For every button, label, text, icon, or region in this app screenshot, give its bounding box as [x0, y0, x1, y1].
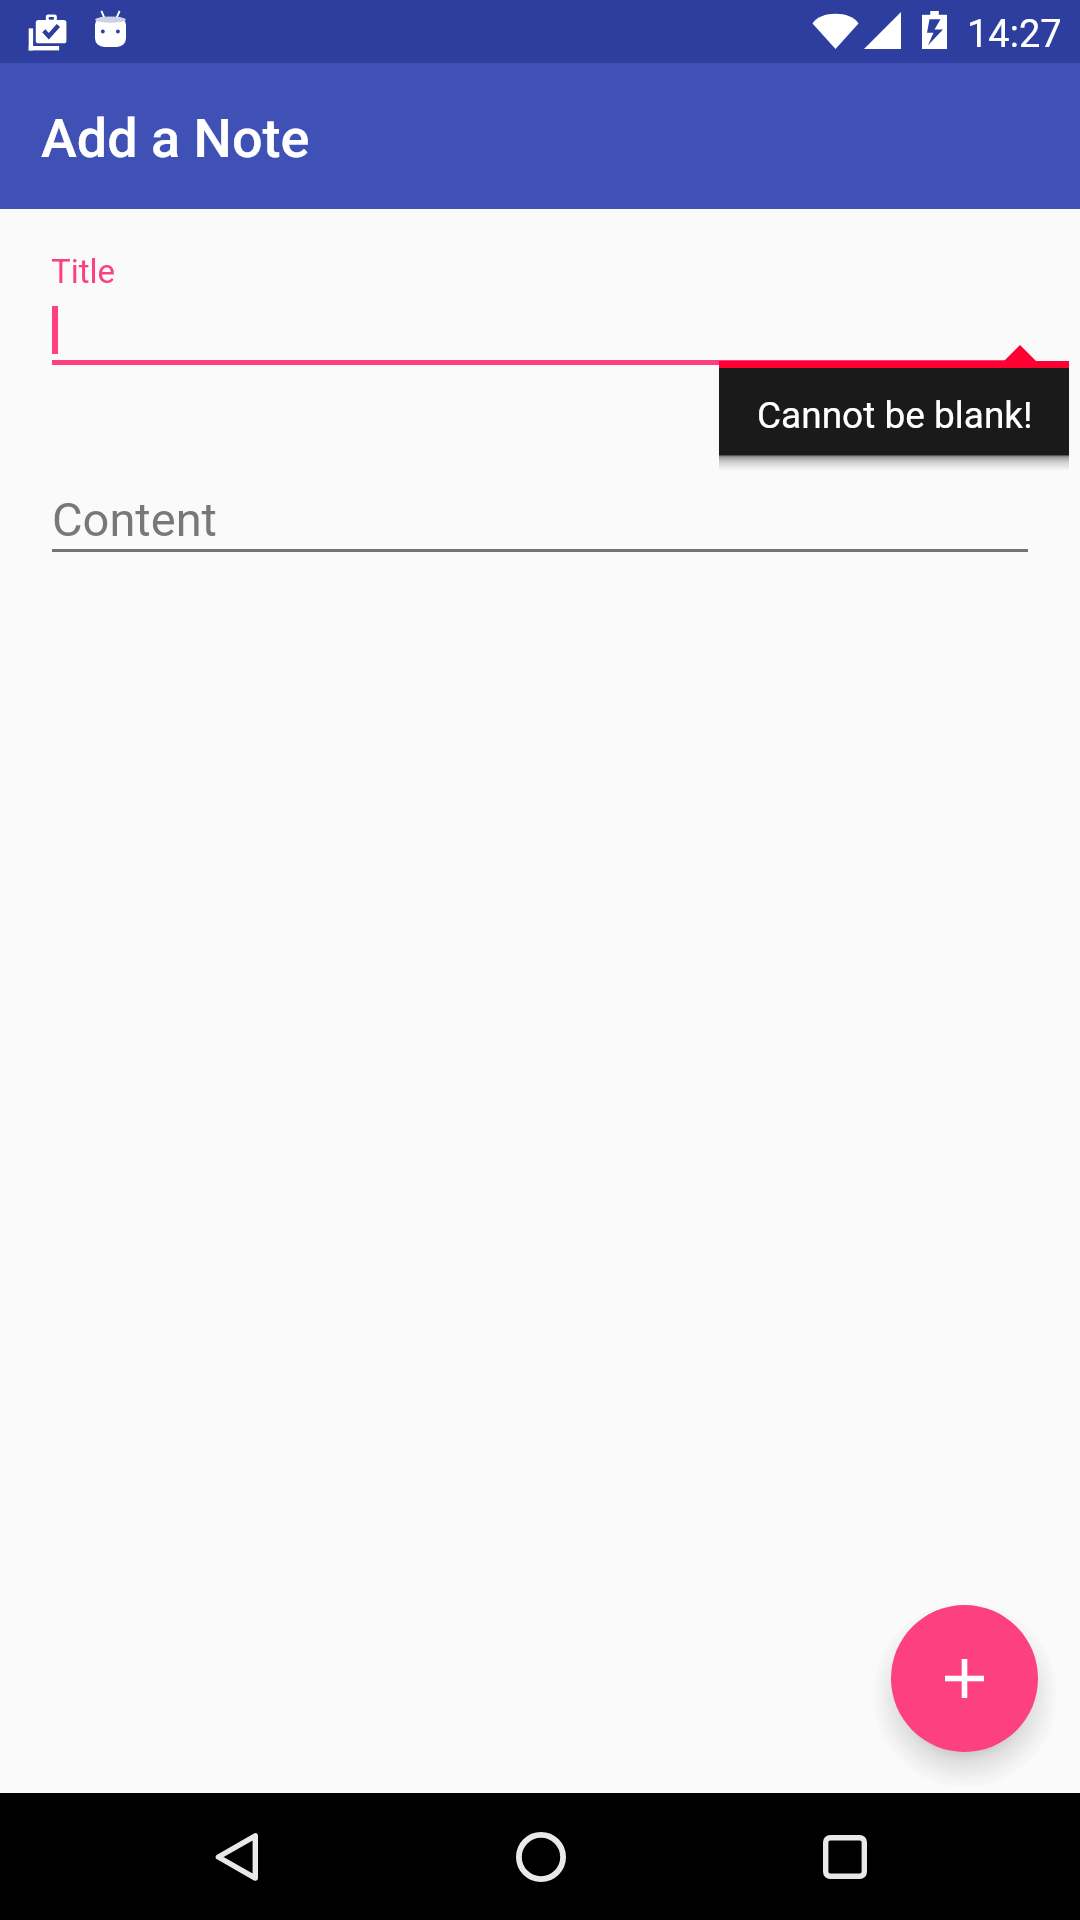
button[interactable]: Recent apps: [781, 1793, 908, 1920]
button[interactable]: Home: [477, 1793, 604, 1920]
staticText: Content: [52, 492, 217, 547]
button[interactable]: Back: [173, 1793, 300, 1920]
staticText: 14:27: [967, 12, 1062, 57]
button[interactable]: Add note: [891, 1605, 1038, 1752]
staticText: Title: [51, 252, 116, 291]
staticText: Cannot be blank!: [757, 394, 1033, 437]
button[interactable]: Content field: [52, 480, 1028, 552]
button[interactable]: Title field: [52, 240, 1028, 365]
staticText: Add a Note: [41, 107, 310, 170]
